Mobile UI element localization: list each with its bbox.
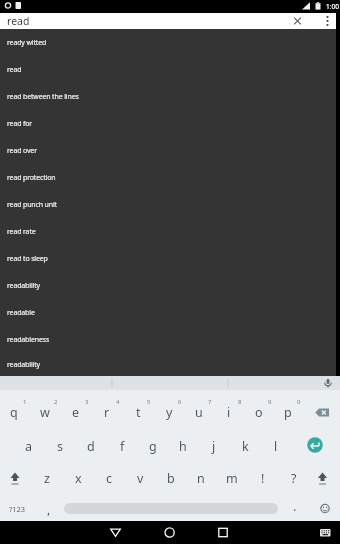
button[interactable]: read [0,13,336,29]
button[interactable] [155,521,184,544]
staticText: x [75,470,82,487]
button[interactable]: read to sleep [0,245,336,272]
staticText: w [40,404,50,421]
button[interactable]: p [274,400,302,424]
button[interactable] [208,521,237,544]
staticText: ready witted [7,38,47,48]
staticText: ? [291,470,297,487]
staticText: o [255,404,263,421]
button[interactable]: d [77,434,105,458]
staticText: b [167,470,175,487]
staticText: , [47,501,51,518]
button[interactable]: z [33,466,61,490]
staticText: readability [7,281,41,291]
button[interactable]: r [93,400,121,424]
staticText: readable [7,308,35,318]
button[interactable]: read [0,56,336,83]
button[interactable]: read punch unit [0,191,336,218]
staticText: ?123 [9,504,26,514]
staticText: read [7,65,22,75]
button[interactable]: readabliity [0,353,336,376]
button[interactable]: readable [0,299,336,326]
staticText: 8 [238,398,242,406]
button[interactable]: m [218,466,246,490]
staticText: n [197,470,205,487]
staticText: readableness [7,335,50,345]
staticText: read over [7,146,37,156]
button[interactable]: x [64,466,92,490]
staticText: g [149,438,157,455]
staticText: 9 [268,398,272,406]
staticText: read between the lines [7,92,79,102]
button[interactable]: read over [0,137,336,164]
staticText: 3 [85,398,89,406]
button[interactable]: f [108,434,136,458]
staticText: ! [261,470,265,487]
staticText: read punch unit [7,200,57,210]
button[interactable]: . [281,494,309,518]
button[interactable]: v [126,466,154,490]
staticText: 4 [116,398,120,406]
staticText: m [226,470,238,487]
button[interactable]: ! [249,466,277,490]
button[interactable]: y [155,400,183,424]
button[interactable]: read protection [0,164,336,191]
staticText: p [284,404,292,421]
staticText: v [137,470,144,487]
staticText: e [72,404,80,421]
staticText: j [212,438,216,455]
button[interactable]: readableness [0,326,336,353]
button[interactable]: k [231,434,259,458]
button[interactable]: g [139,434,167,458]
button[interactable]: t [124,400,152,424]
staticText: t [136,404,141,421]
button[interactable]: n [187,466,215,490]
button[interactable]: s [46,434,74,458]
button[interactable]: e [62,400,90,424]
staticText: q [10,404,18,421]
staticText: r [104,404,110,421]
staticText: 1:00 [326,2,339,11]
staticText: k [242,438,249,455]
staticText: readabliity [7,360,41,370]
staticText: a [25,438,33,455]
staticText: read protection [7,173,56,183]
staticText: 2 [54,398,58,406]
button[interactable]: readability [0,272,336,299]
staticText: d [87,438,95,455]
button[interactable]: read rate [0,218,336,245]
button[interactable]: h [169,434,197,458]
staticText: read for [7,119,33,129]
staticText: 6 [178,398,182,406]
button[interactable]: ? [280,466,308,490]
staticText: 0 [297,398,301,406]
button[interactable]: read for [0,110,336,137]
button[interactable]: l [262,434,290,458]
button[interactable] [101,521,130,544]
button[interactable]: , [35,497,63,521]
staticText: read [7,14,30,28]
button[interactable]: ready witted [0,29,336,56]
staticText: f [120,438,125,455]
staticText: z [44,470,50,487]
button[interactable]: b [157,466,185,490]
button[interactable]: j [200,434,228,458]
button[interactable]: w [31,400,59,424]
button[interactable]: u [185,400,213,424]
button[interactable]: a [15,434,43,458]
button[interactable]: o [245,400,273,424]
staticText: . [293,498,297,515]
staticText: 5 [147,398,151,406]
button[interactable]: i [215,400,243,424]
button[interactable]: c [95,466,123,490]
staticText: c [106,470,113,487]
button[interactable]: ?123 [3,497,31,521]
button[interactable]: read between the lines [0,83,336,110]
button[interactable]: q [0,400,28,424]
staticText: s [57,438,63,455]
button[interactable] [315,521,335,544]
staticText: l [274,438,278,455]
staticText: 7 [208,398,212,406]
